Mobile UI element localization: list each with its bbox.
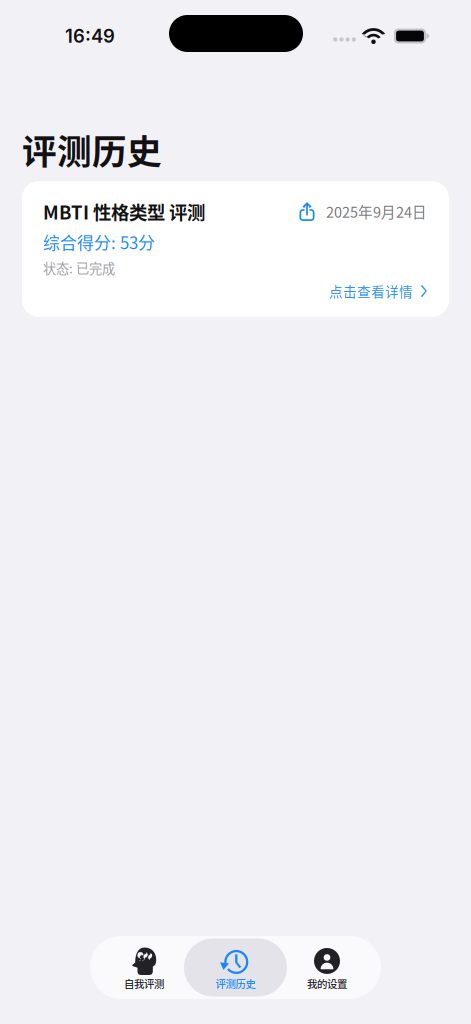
button[interactable]: MBTI 性格类型 评测 bbox=[22, 181, 449, 317]
button[interactable]: 评测历史 bbox=[184, 938, 287, 996]
staticText: 状态: 已完成 bbox=[43, 258, 115, 277]
staticText: 2025年9月24日 bbox=[326, 201, 427, 222]
button[interactable]: 我的设置 bbox=[275, 938, 378, 996]
staticText: 评测历史 bbox=[215, 976, 255, 991]
staticText: 我的设置 bbox=[307, 976, 347, 991]
staticText: 评测历史 bbox=[22, 124, 162, 174]
staticText: MBTI 性格类型 评测 bbox=[43, 198, 205, 225]
button[interactable]: 自我评测 bbox=[92, 938, 195, 996]
staticText: 综合得分: 53分 bbox=[43, 230, 155, 254]
staticText: 点击查看详情 bbox=[329, 281, 413, 301]
staticText: 16:49 bbox=[65, 25, 115, 47]
staticText: 自我评测 bbox=[124, 976, 164, 991]
